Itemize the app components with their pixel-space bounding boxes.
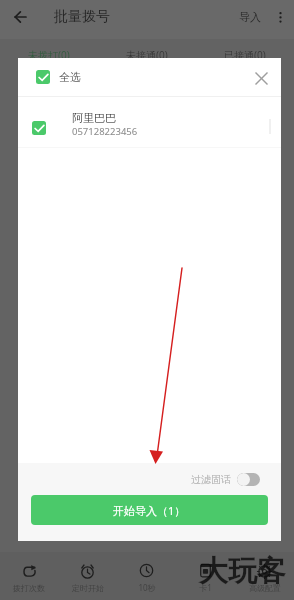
staticText: 过滤固话 [191,473,231,486]
button[interactable]: More options [267,4,293,30]
staticText: 阿里巴巴 [72,111,116,125]
button[interactable]: 未接通(0) [98,39,196,71]
staticText: 卡1 [199,582,212,593]
button[interactable]: Close [244,61,278,95]
button[interactable]: 10秒 [117,552,176,600]
staticText: 开始导入（1） [113,503,186,518]
staticText: 拨打次数 [13,583,45,593]
staticText: 057128223456 [72,125,138,138]
staticText: 导入 [239,10,261,24]
staticText: 批量拨号 [54,8,110,26]
button[interactable]: 阿里巴巴 [18,104,281,147]
staticText: 10秒 [138,582,156,593]
button[interactable]: 拨打次数 [0,552,58,600]
button[interactable]: 卡1 [176,552,235,600]
staticText: 大玩客 [199,553,286,590]
button[interactable]: 已接通(0) [196,39,294,71]
button[interactable]: Filter landline toggle [237,473,260,486]
button[interactable]: 导入 [233,5,267,29]
button[interactable]: 开始导入（1） [31,495,268,525]
button[interactable]: 全选 [18,63,93,91]
staticText: 未拨打(0) [28,48,70,62]
button[interactable]: 未拨打(0) [0,39,98,71]
staticText: 未接通(0) [126,48,168,62]
button[interactable]: 定时开始 [58,552,117,600]
button[interactable]: 过滤固话 [183,469,281,490]
button[interactable]: Back [4,1,36,33]
staticText: 全选 [59,70,81,84]
button[interactable]: 高级配置 [235,552,294,600]
staticText: 定时开始 [72,583,104,593]
staticText: 已接通(0) [224,48,266,62]
staticText: 高级配置 [249,583,281,593]
